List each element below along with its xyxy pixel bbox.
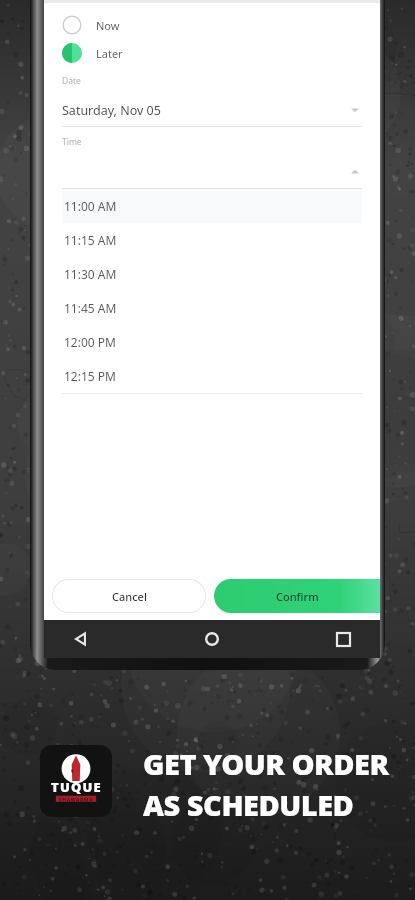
button[interactable]: Saturday, Nov 05 [62, 99, 362, 121]
staticText: Date [62, 75, 81, 87]
button[interactable]: 12:15 PM [62, 359, 362, 393]
button[interactable]: Home [197, 624, 227, 654]
button[interactable]: 11:45 AM [62, 291, 362, 325]
button[interactable]: Cancel [52, 579, 206, 613]
button[interactable]: 12:00 PM [62, 325, 362, 359]
staticText: 11:00 AM [64, 198, 117, 214]
staticText: Saturday, Nov 05 [62, 102, 348, 119]
staticText: Later [96, 46, 123, 61]
button[interactable]: Confirm [214, 579, 380, 613]
staticText: Confirm [276, 589, 319, 604]
staticText: GET YOUR ORDER [143, 744, 389, 783]
staticText: 12:00 PM [64, 334, 116, 350]
button[interactable]: 11:30 AM [62, 257, 362, 291]
other: Tuque Shawarma logo [40, 745, 112, 817]
button[interactable]: 11:00 AM [62, 189, 362, 223]
staticText: 12:15 PM [64, 368, 116, 384]
staticText: Cancel [112, 589, 147, 604]
button[interactable]: 11:15 AM [62, 223, 362, 257]
staticText: SHAWARMA [59, 797, 94, 804]
staticText: 11:45 AM [64, 300, 117, 316]
staticText: Time [62, 136, 82, 148]
staticText: AS SCHEDULED [143, 785, 354, 824]
button[interactable]: Back [66, 624, 96, 654]
button[interactable]: Later [62, 39, 362, 67]
staticText: Now [96, 18, 120, 33]
button[interactable]: Recent apps [328, 624, 358, 654]
button[interactable]: Now [62, 11, 362, 39]
staticText: 11:15 AM [64, 232, 117, 248]
staticText: TUQUE [51, 778, 102, 796]
staticText: 11:30 AM [64, 266, 117, 282]
